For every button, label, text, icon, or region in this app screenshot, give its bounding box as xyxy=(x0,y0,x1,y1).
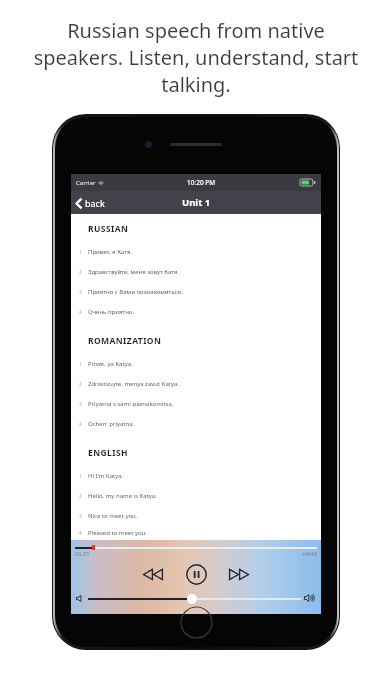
staticText: Hi I'm Katya. xyxy=(88,472,124,480)
button[interactable]: 3 xyxy=(79,394,313,414)
staticText: 00:25 xyxy=(75,550,90,557)
staticText: Hello, my name is Katya. xyxy=(88,492,157,500)
button[interactable]: 1 xyxy=(79,466,313,486)
staticText: ENGLISH xyxy=(88,447,128,459)
staticText: 3 xyxy=(79,401,82,407)
button[interactable]: Mute xyxy=(76,594,85,603)
staticText: 2 xyxy=(79,493,82,499)
staticText: Приятно с Вами познакомиться. xyxy=(88,288,183,296)
button[interactable]: 4 xyxy=(79,302,313,322)
button[interactable]: 4 xyxy=(79,526,313,540)
staticText: Очень приятно. xyxy=(88,308,135,316)
button[interactable]: 2 xyxy=(79,374,313,394)
button[interactable]: Rewind xyxy=(139,560,167,588)
staticText: 4 xyxy=(79,530,82,536)
staticText: back xyxy=(85,197,105,209)
staticText: RUSSIAN xyxy=(88,223,129,235)
staticText: 10:20 PM xyxy=(187,178,216,187)
staticText: 1 xyxy=(79,473,82,479)
staticText: 3 xyxy=(79,289,82,295)
staticText: Nice to meet you. xyxy=(88,512,138,520)
staticText: 2 xyxy=(79,269,82,275)
button[interactable]: 2 xyxy=(79,262,313,282)
button[interactable]: Home xyxy=(180,606,213,639)
staticText: ROMANIZATION xyxy=(88,335,162,347)
button[interactable]: 1 xyxy=(79,354,313,374)
button[interactable]: Pause xyxy=(183,561,209,587)
staticText: Привет, я Катя. xyxy=(88,248,132,256)
staticText: Unit 1 xyxy=(182,196,211,209)
staticText: Carrier xyxy=(76,179,96,187)
staticText: -04:44 xyxy=(301,550,317,557)
staticText: Zdrastvuyte, menya zavut Katya. xyxy=(88,380,180,388)
button[interactable]: 2 xyxy=(79,486,313,506)
staticText: Здравствуйте, меня зовут Катя. xyxy=(88,268,180,276)
staticText: Privet, ya Katya. xyxy=(88,360,133,368)
staticText: 2 xyxy=(79,381,82,387)
staticText: 4 xyxy=(79,309,82,315)
staticText: 1 xyxy=(79,361,82,367)
button[interactable]: 4 xyxy=(79,414,313,434)
staticText: 3 xyxy=(79,513,82,519)
button[interactable]: 1 xyxy=(79,242,313,262)
staticText: 1 xyxy=(79,249,82,255)
staticText: Russian speech from native speakers. Lis… xyxy=(24,17,368,98)
staticText: Ochen' priyatna. xyxy=(88,420,135,428)
staticText: Pleased to meet you. xyxy=(88,529,147,537)
button[interactable]: 3 xyxy=(79,282,313,302)
button[interactable]: back xyxy=(71,193,113,213)
button[interactable]: Fast forward xyxy=(225,560,253,588)
staticText: Priyatna s vami paznakomitsa. xyxy=(88,400,174,408)
staticText: 4 xyxy=(79,421,82,427)
button[interactable]: Volume up xyxy=(304,592,316,604)
button[interactable] xyxy=(88,593,301,604)
button[interactable]: 3 xyxy=(79,506,313,526)
